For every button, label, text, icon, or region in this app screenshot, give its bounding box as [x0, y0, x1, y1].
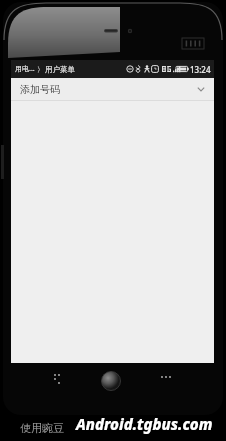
other: Expand — [197, 85, 205, 93]
staticText: Android.tgbus.com — [76, 414, 213, 434]
staticText: 添加号码 — [20, 83, 60, 96]
staticText: 13:24 — [190, 64, 211, 75]
staticText: 〉 — [37, 65, 44, 74]
button[interactable]: 添加号码 — [11, 78, 214, 100]
staticText: 使用豌豆 — [20, 421, 64, 435]
staticText: 用电... — [15, 64, 35, 74]
staticText: 用户菜单 — [45, 65, 75, 74]
